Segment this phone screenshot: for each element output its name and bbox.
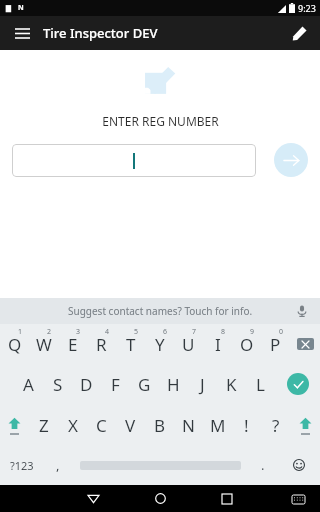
staticText: . [261, 456, 265, 474]
staticText: V [125, 414, 136, 437]
button[interactable]: ! [232, 404, 261, 447]
staticText: R [96, 333, 107, 356]
staticText: C [96, 414, 107, 437]
staticText: 5 [134, 327, 139, 337]
button[interactable]: X [58, 404, 87, 447]
button[interactable]: L [246, 364, 275, 404]
staticText: ENTER REG NUMBER [102, 113, 219, 129]
staticText: P [270, 333, 281, 356]
button[interactable]: C [87, 404, 116, 447]
button[interactable]: 3 [58, 324, 87, 364]
button[interactable]: ? [261, 404, 290, 447]
button[interactable]: 9 [232, 324, 261, 364]
staticText: Suggest contact names? Touch for info. [68, 304, 253, 318]
button[interactable]: ?123 [0, 447, 43, 483]
button[interactable]: Enter [275, 364, 320, 404]
staticText: 6 [163, 327, 168, 337]
button[interactable]: K [217, 364, 246, 404]
staticText: S [53, 373, 63, 396]
staticText: B [154, 414, 166, 437]
staticText: 7 [192, 327, 197, 337]
staticText: A [23, 373, 34, 396]
button[interactable]: 0 [261, 324, 290, 364]
button[interactable]: M [203, 404, 232, 447]
button[interactable]: Back [79, 485, 107, 512]
button[interactable]: Open navigation drawer [8, 19, 36, 47]
button[interactable]: Shift [290, 404, 320, 447]
staticText: J [200, 373, 205, 396]
button[interactable] [12, 144, 256, 177]
staticText: 3 [76, 327, 81, 337]
staticText: Z [39, 414, 49, 437]
button[interactable]: F [101, 364, 130, 404]
button[interactable]: Submit [274, 143, 308, 177]
button[interactable]: Shift [0, 404, 29, 447]
button[interactable]: Backspace [290, 324, 320, 364]
staticText: Tire Inspector DEV [43, 24, 158, 42]
button[interactable]: . [248, 447, 278, 483]
staticText: H [167, 373, 180, 396]
staticText: E [68, 333, 78, 356]
button[interactable]: N [174, 404, 203, 447]
button[interactable]: Edit [285, 19, 313, 47]
button[interactable]: Recent apps [213, 485, 241, 512]
staticText: ? [272, 414, 280, 437]
staticText: I [215, 333, 221, 356]
staticText: M [210, 414, 226, 437]
button[interactable]: Z [29, 404, 58, 447]
button[interactable]: Voice input [292, 301, 312, 321]
button[interactable]: 2 [29, 324, 58, 364]
staticText: 9:23 [298, 2, 316, 14]
staticText: 2 [47, 327, 52, 337]
staticText: L [256, 373, 265, 396]
staticText: O [240, 333, 254, 356]
button[interactable]: S [43, 364, 72, 404]
staticText: 8 [221, 327, 226, 337]
button[interactable]: 7 [174, 324, 203, 364]
staticText: Q [8, 333, 22, 356]
staticText: T [126, 333, 136, 356]
staticText: G [138, 373, 151, 396]
button[interactable]: Suggest contact names? Touch for info. [0, 298, 320, 324]
button[interactable]: 8 [203, 324, 232, 364]
staticText: K [226, 373, 237, 396]
staticText: X [68, 414, 78, 437]
staticText: F [111, 373, 120, 396]
button[interactable]: D [72, 364, 101, 404]
button[interactable]: G [130, 364, 159, 404]
staticText: ?123 [10, 458, 34, 473]
button[interactable]: Space [73, 447, 248, 483]
button[interactable]: B [145, 404, 174, 447]
button[interactable]: 6 [145, 324, 174, 364]
staticText: Y [155, 333, 165, 356]
staticText: N [182, 414, 195, 437]
button[interactable]: H [159, 364, 188, 404]
button[interactable]: A [14, 364, 43, 404]
staticText: 0 [279, 327, 284, 337]
staticText: ! [244, 414, 249, 437]
button[interactable]: Home [146, 485, 174, 512]
staticText: U [182, 333, 195, 356]
button[interactable]: , [43, 447, 73, 483]
staticText: N [18, 3, 24, 13]
staticText: W [36, 333, 52, 356]
staticText: 4 [105, 327, 110, 337]
button[interactable]: Emoji [278, 447, 320, 483]
button[interactable]: 5 [116, 324, 145, 364]
staticText: , [56, 456, 60, 474]
button[interactable]: 4 [87, 324, 116, 364]
staticText: 1 [18, 327, 23, 337]
button[interactable]: V [116, 404, 145, 447]
button[interactable]: J [188, 364, 217, 404]
button[interactable]: 1 [0, 324, 29, 364]
staticText: D [80, 373, 93, 396]
button[interactable]: Switch keyboard [286, 487, 310, 511]
staticText: 9 [250, 327, 255, 337]
